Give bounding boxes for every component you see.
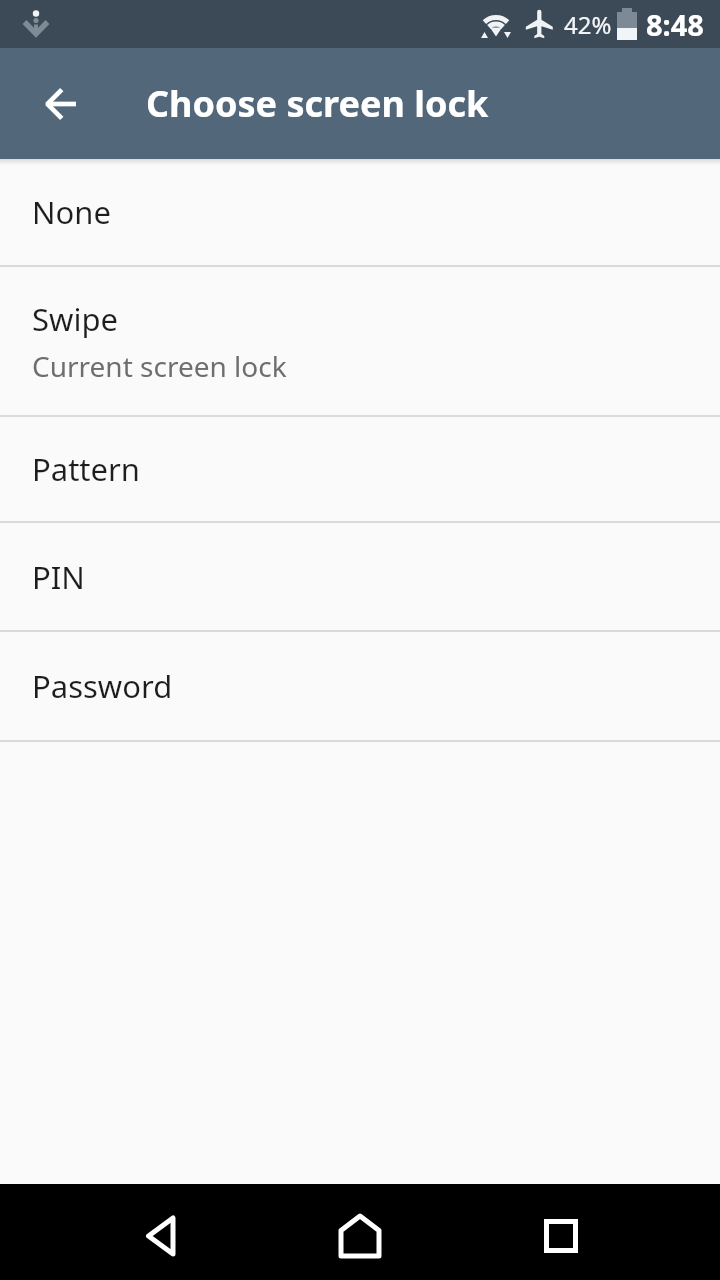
button[interactable]: Password <box>0 632 720 740</box>
button[interactable]: None <box>0 159 720 265</box>
button[interactable]: Swipe <box>0 267 720 415</box>
staticText: 8:48 <box>646 5 704 44</box>
button[interactable] <box>101 1184 221 1280</box>
staticText: 42% <box>564 8 612 41</box>
staticText: Password <box>32 665 173 707</box>
staticText: Current screen lock <box>32 347 287 385</box>
button[interactable] <box>300 1184 420 1280</box>
staticText: Swipe <box>32 298 118 340</box>
button[interactable] <box>0 48 104 159</box>
staticText: Choose screen lock <box>146 79 489 128</box>
button[interactable] <box>501 1184 621 1280</box>
button[interactable]: PIN <box>0 523 720 630</box>
button[interactable]: Pattern <box>0 417 720 521</box>
staticText: Pattern <box>32 448 140 490</box>
staticText: None <box>32 191 111 233</box>
staticText: PIN <box>32 556 85 598</box>
